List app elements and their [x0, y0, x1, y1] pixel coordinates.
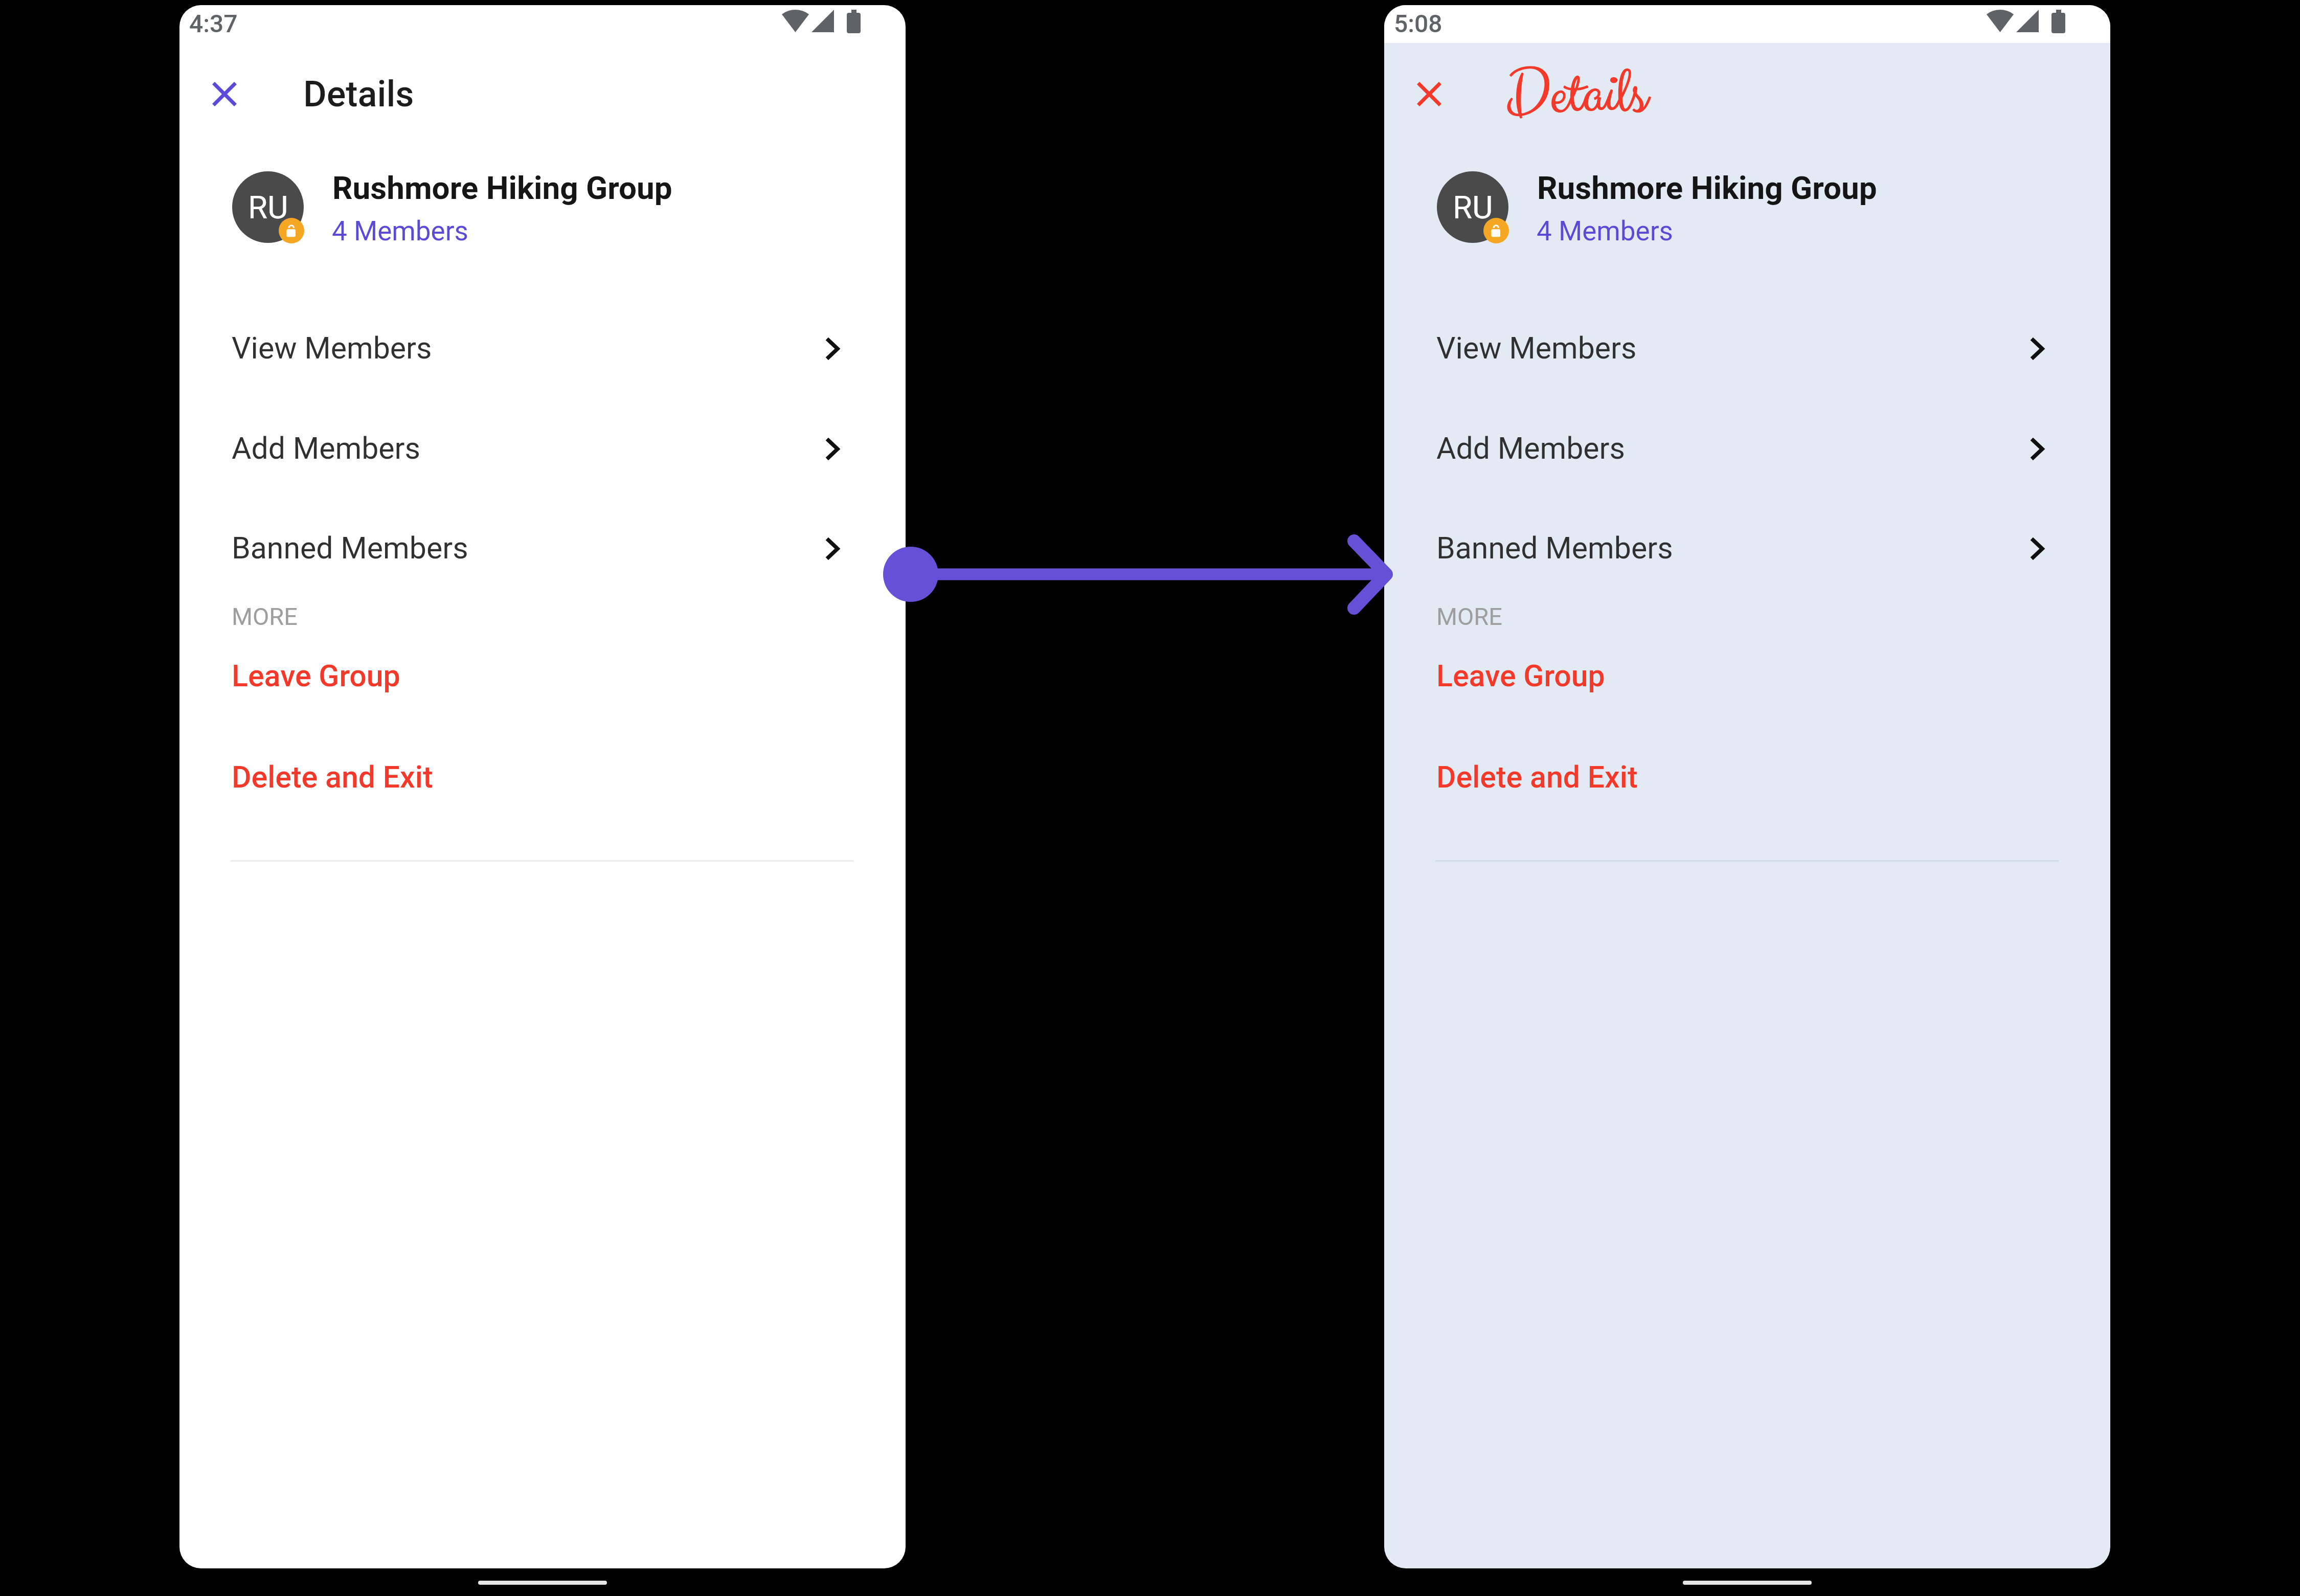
staticText: Details: [1506, 54, 1647, 138]
staticText: RU: [248, 189, 288, 226]
staticText: Leave Group: [232, 658, 400, 693]
button[interactable]: Add Members: [179, 417, 906, 479]
staticText: Delete and Exit: [232, 759, 433, 795]
staticText: Add Members: [1436, 431, 1626, 466]
button[interactable]: Add Members: [1384, 417, 2110, 479]
button[interactable]: Close: [207, 76, 242, 110]
staticText: 5:08: [1394, 9, 1442, 38]
staticText: RU: [1453, 189, 1493, 226]
button[interactable]: Delete and Exit: [179, 746, 906, 807]
button[interactable]: Delete and Exit: [1384, 746, 2110, 807]
staticText: Details: [303, 73, 414, 115]
staticText: 4 Members: [1537, 215, 1673, 247]
button[interactable]: Leave Group: [1384, 645, 2110, 706]
staticText: Rushmore Hiking Group: [1537, 169, 1877, 207]
button[interactable]: Banned Members: [179, 517, 906, 578]
staticText: Delete and Exit: [1436, 759, 1638, 795]
button[interactable]: Leave Group: [179, 645, 906, 706]
staticText: Banned Members: [232, 530, 468, 566]
staticText: 4:37: [189, 9, 238, 38]
staticText: MORE: [232, 602, 298, 631]
staticText: Details: [1506, 54, 1647, 138]
button[interactable]: View Members: [179, 317, 906, 378]
staticText: Rushmore Hiking Group: [332, 169, 672, 207]
staticText: 4 Members: [332, 215, 468, 247]
staticText: MORE: [1436, 602, 1503, 631]
button[interactable]: Banned Members: [1384, 517, 2110, 578]
button[interactable]: View Members: [1384, 317, 2110, 378]
staticText: Banned Members: [1436, 530, 1673, 566]
button[interactable]: Close: [1412, 76, 1447, 110]
staticText: Leave Group: [1436, 658, 1605, 693]
staticText: Add Members: [232, 431, 421, 466]
staticText: View Members: [232, 330, 432, 366]
staticText: View Members: [1436, 330, 1637, 366]
